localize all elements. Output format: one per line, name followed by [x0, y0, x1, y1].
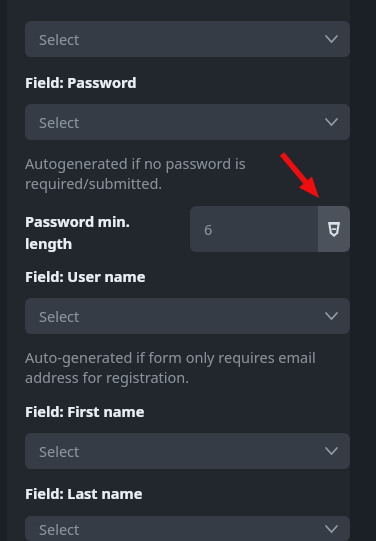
button[interactable]: Select: [25, 104, 350, 140]
staticText: Select: [39, 441, 80, 461]
button[interactable]: 6: [190, 206, 350, 252]
staticText: Select: [39, 112, 80, 132]
staticText: Autogenerated if no password is required…: [25, 153, 246, 194]
button[interactable]: Select: [25, 516, 350, 541]
staticText: Field: User name: [25, 266, 146, 286]
button[interactable]: Select: [25, 433, 350, 469]
button[interactable]: Select: [25, 298, 350, 334]
staticText: Auto-generated if form only requires ema…: [25, 347, 316, 388]
staticText: Field: Password: [25, 72, 137, 92]
button[interactable]: Select: [25, 21, 350, 57]
staticText: Field: First name: [25, 401, 145, 421]
staticText: Select: [39, 29, 80, 49]
staticText: Password min. length: [25, 211, 184, 253]
staticText: Select: [39, 519, 80, 539]
staticText: 6: [204, 219, 213, 239]
staticText: Select: [39, 306, 80, 326]
button[interactable]: Insert merge tag: [318, 206, 350, 252]
staticText: Field: Last name: [25, 483, 143, 503]
